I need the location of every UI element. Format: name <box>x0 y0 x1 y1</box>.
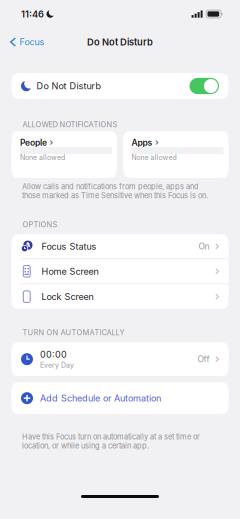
button[interactable]: Do Not Disturb <box>0 73 240 99</box>
staticText: Every Day <box>40 361 74 369</box>
staticText: TURN ON AUTOMATICALLY <box>22 328 124 337</box>
staticText: Do Not Disturb <box>87 36 153 48</box>
button[interactable]: Add Schedule or Automation <box>0 382 240 414</box>
button[interactable]: Lock Screen <box>11 284 228 309</box>
staticText: Lock Screen <box>41 291 93 302</box>
button[interactable]: 00:00 <box>0 342 240 376</box>
staticText: None allowed <box>20 153 65 162</box>
staticText: Focus <box>19 36 44 47</box>
staticText: On <box>198 241 209 251</box>
staticText: Do Not Disturb <box>36 80 101 91</box>
button[interactable]: Home Screen <box>11 259 228 284</box>
staticText: 00:00 <box>40 349 67 360</box>
staticText: OPTIONS <box>22 220 57 229</box>
staticText: Have this Focus turn on automatically at… <box>22 432 200 450</box>
staticText: Focus Status <box>41 241 96 252</box>
staticText: 11:46 <box>21 8 44 20</box>
staticText: Home Screen <box>41 266 98 277</box>
button[interactable]: Focus <box>0 31 50 52</box>
staticText: People <box>20 137 47 148</box>
staticText: ALLOWED NOTIFICATIONS <box>22 120 117 129</box>
button[interactable]: People <box>11 131 117 178</box>
staticText: None allowed <box>131 153 176 162</box>
staticText: Off <box>197 354 209 364</box>
button[interactable]: Focus Status <box>11 234 228 259</box>
button[interactable]: Apps <box>123 131 228 178</box>
staticText: Apps <box>131 137 152 148</box>
staticText: Allow calls and notifications from peopl… <box>22 182 208 200</box>
staticText: Add Schedule or Automation <box>40 393 161 404</box>
